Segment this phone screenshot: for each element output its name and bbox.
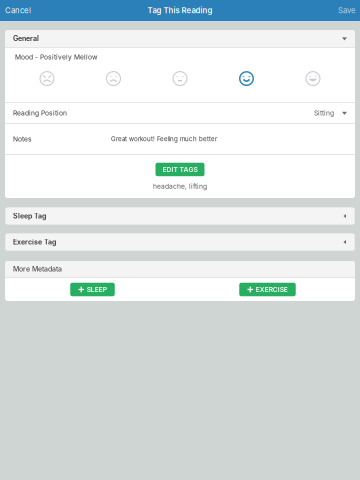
staticText: EXERCISE	[256, 285, 288, 294]
staticText: Exercise Tag	[13, 238, 56, 246]
button[interactable]: EXERCISE	[239, 283, 296, 296]
staticText: Sitting	[314, 109, 334, 117]
button[interactable]: Sleep Tag	[5, 207, 355, 225]
staticText: Tag This Reading	[147, 6, 212, 15]
button[interactable]: Cancel	[0, 0, 36, 21]
staticText: SLEEP	[87, 285, 107, 294]
staticText: Great workout! Feeling much better	[111, 135, 217, 143]
button[interactable]: EDIT TAGS	[155, 163, 204, 176]
button[interactable]: More Metadata	[5, 261, 355, 277]
staticText: General	[13, 34, 39, 43]
staticText: headache, lifting	[153, 182, 207, 190]
staticText: EDIT TAGS	[162, 165, 197, 173]
staticText: Notes	[13, 135, 32, 143]
staticText: Sleep Tag	[13, 212, 46, 220]
button[interactable]: SLEEP	[70, 283, 115, 296]
staticText: Mood - Positively Mellow	[15, 53, 97, 61]
button[interactable]: Exercise Tag	[5, 233, 355, 251]
staticText: Cancel	[5, 6, 31, 15]
button[interactable]: Save	[334, 0, 360, 21]
staticText: More Metadata	[13, 265, 62, 273]
staticText: Reading Position	[13, 109, 67, 117]
staticText: Save	[338, 6, 356, 15]
button[interactable]: General	[5, 30, 355, 47]
